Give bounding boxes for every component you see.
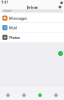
button[interactable]: ◈: [0, 33, 64, 42]
button[interactable]: New item: [58, 51, 63, 56]
staticText: Inbox: [26, 4, 37, 10]
button[interactable]: Games: [16, 87, 32, 100]
button[interactable]: Compose: [58, 5, 64, 9]
button[interactable]: 💬: [0, 13, 64, 23]
staticText: ✉: [4, 26, 6, 29]
staticText: ◈: [4, 36, 6, 39]
button[interactable]: Apps: [32, 87, 48, 100]
staticText: Photos: [9, 35, 20, 40]
staticText: Messages: [9, 15, 27, 21]
button[interactable]: Today: [0, 87, 16, 100]
staticText: Search: [4, 9, 12, 13]
staticText: 9:41: [2, 1, 9, 4]
staticText: Mail: [9, 25, 17, 30]
staticText: ✚: [58, 5, 61, 9]
staticText: ▮▮: [60, 1, 62, 4]
button[interactable]: ✉: [0, 23, 64, 33]
button[interactable]: Search: [48, 87, 64, 100]
staticText: 💬: [3, 17, 6, 20]
